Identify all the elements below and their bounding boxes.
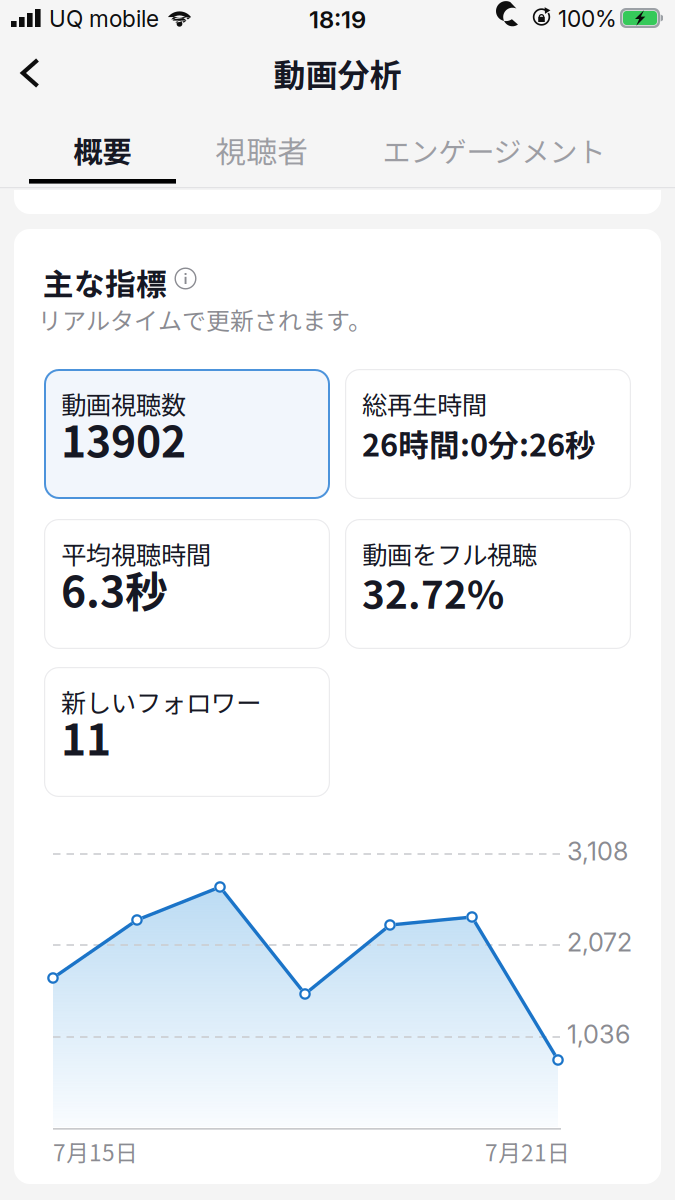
- staticText: 動画分析: [273, 50, 401, 96]
- staticText: 主な指標: [43, 260, 167, 304]
- staticText: 7月15日: [53, 1135, 138, 1168]
- staticText: 動画をフル視聴: [362, 535, 537, 572]
- staticText: UQ mobile: [49, 5, 159, 32]
- staticText: エンゲージメント: [382, 130, 605, 170]
- staticText: 概要: [73, 129, 131, 171]
- staticText: 平均視聴時間: [61, 535, 211, 572]
- staticText: 視聴者: [215, 128, 308, 172]
- button[interactable]: 新しいフォロワー: [44, 667, 330, 797]
- button[interactable]: エンゲージメント: [378, 122, 610, 178]
- button[interactable]: 動画視聴数: [44, 369, 330, 499]
- staticText: 新しいフォロワー: [61, 683, 261, 720]
- staticText: 32.72%: [362, 564, 504, 620]
- staticText: 7月21日: [485, 1135, 570, 1168]
- button[interactable]: 動画をフル視聴: [345, 519, 631, 649]
- staticText: 3,108: [567, 836, 628, 867]
- staticText: 2,072: [567, 927, 632, 958]
- staticText: リアルタイムで更新されます。: [38, 302, 372, 337]
- button[interactable]: 戻る: [0, 44, 60, 102]
- staticText: 26時間:0分:26秒: [362, 421, 596, 465]
- staticText: 13902: [61, 408, 186, 470]
- button[interactable]: 総再生時間: [345, 369, 631, 499]
- staticText: 総再生時間: [362, 385, 487, 422]
- staticText: 11: [61, 706, 111, 768]
- staticText: 動画視聴数: [61, 385, 186, 422]
- staticText: 6.3秒: [61, 558, 168, 620]
- button[interactable]: 視聴者: [196, 122, 328, 178]
- staticText: 1,036: [567, 1019, 630, 1050]
- button[interactable]: 平均視聴時間: [44, 519, 330, 649]
- button[interactable]: 概要: [29, 122, 176, 178]
- staticText: 18:19: [309, 5, 366, 34]
- staticText: 100%: [558, 5, 617, 32]
